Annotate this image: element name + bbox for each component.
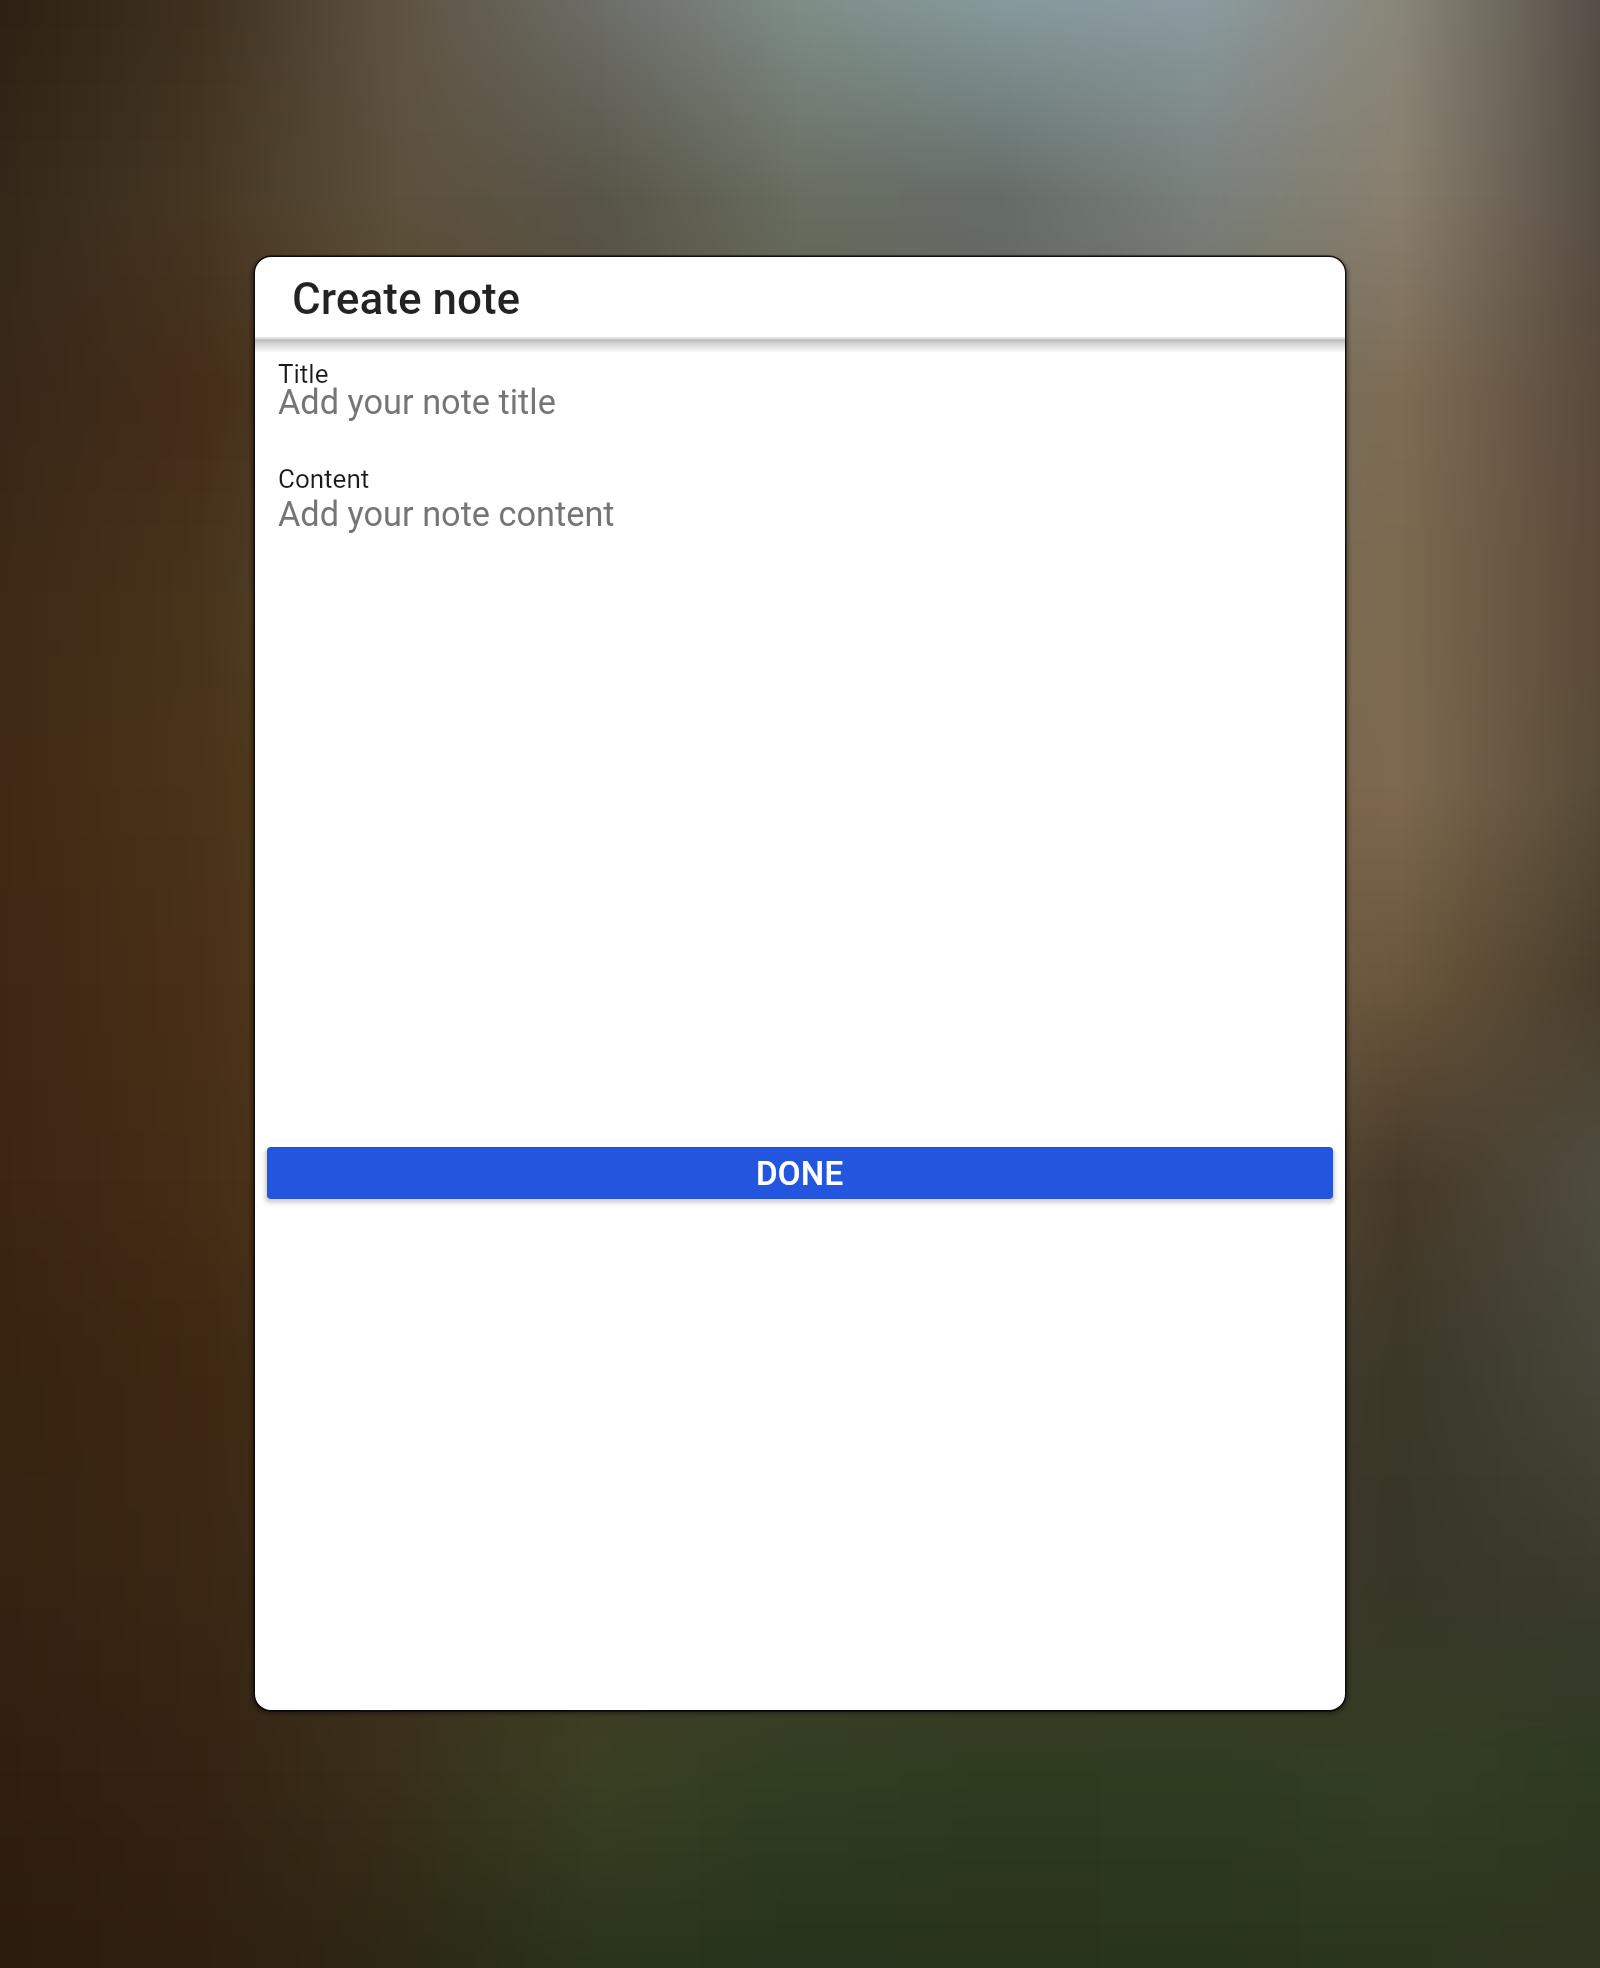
button[interactable]: Note title input: [255, 353, 1345, 431]
staticText: Title: [278, 359, 329, 389]
button[interactable]: Note content input: [255, 458, 1345, 1138]
button[interactable]: DONE: [267, 1147, 1333, 1199]
staticText: DONE: [756, 1154, 844, 1193]
staticText: Create note: [292, 273, 521, 325]
staticText: Content: [278, 464, 370, 494]
staticText: Add your note title: [278, 382, 556, 422]
staticText: Add your note content: [278, 494, 615, 534]
